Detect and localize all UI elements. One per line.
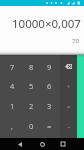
staticText: , — [11, 121, 14, 131]
staticText: − — [67, 123, 71, 130]
staticText: 2 — [29, 101, 34, 111]
staticText: 5 — [29, 81, 34, 91]
staticText: 3 — [47, 101, 52, 111]
staticText: 70 — [72, 37, 79, 45]
staticText: 0 — [29, 121, 34, 131]
staticText: ÷ — [67, 83, 71, 90]
button[interactable]: Home — [32, 138, 52, 150]
button[interactable]: Recents — [53, 138, 73, 150]
button[interactable]: 0 — [22, 116, 40, 136]
button[interactable]: 6 — [40, 76, 58, 96]
button[interactable]: Multiply — [60, 96, 77, 116]
button[interactable]: Back — [10, 138, 30, 150]
staticText: = — [47, 121, 52, 131]
button[interactable]: = — [40, 116, 58, 136]
button[interactable]: Divide — [60, 76, 77, 96]
button[interactable]: Backspace — [60, 57, 77, 76]
button[interactable]: 4 — [3, 76, 22, 96]
staticText: 8 — [29, 62, 34, 72]
button[interactable]: 9 — [40, 57, 58, 76]
staticText: 6 — [47, 81, 52, 91]
staticText: 9 — [47, 62, 52, 72]
button[interactable]: 2 — [22, 96, 40, 116]
staticText: 10000×0,007 — [12, 16, 81, 32]
button[interactable]: 5 — [22, 76, 40, 96]
button[interactable]: 1 — [3, 96, 22, 116]
button[interactable]: 3 — [40, 96, 58, 116]
staticText: × — [67, 103, 71, 110]
button[interactable]: Minus — [60, 116, 77, 136]
button[interactable]: 7 — [3, 57, 22, 76]
button[interactable]: , — [3, 116, 22, 136]
staticText: 4 — [10, 81, 15, 91]
button[interactable]: 8 — [22, 57, 40, 76]
staticText: 1 — [10, 101, 15, 111]
staticText: 7 — [10, 62, 15, 72]
